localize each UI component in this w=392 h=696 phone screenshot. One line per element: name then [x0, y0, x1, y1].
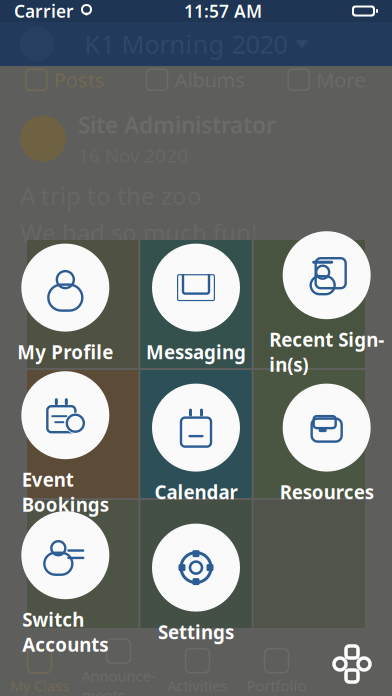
- staticText: Activities: [167, 676, 227, 695]
- button[interactable]: Messaging: [131, 240, 261, 368]
- staticText: Event Bookings: [22, 467, 109, 517]
- staticText: Switch Accounts: [22, 607, 108, 657]
- staticText: Announcements: [81, 666, 155, 696]
- staticText: Albums: [174, 66, 245, 93]
- staticText: Calendar: [154, 480, 237, 504]
- staticText: Resources: [280, 480, 374, 504]
- staticText: Site Administrator: [78, 110, 276, 140]
- staticText: My Profile: [17, 340, 113, 364]
- staticText: 11:57 AM: [184, 0, 262, 22]
- staticText: K1 Morning 2020: [84, 27, 287, 61]
- staticText: Portfolio: [246, 676, 306, 695]
- button[interactable]: Announcements: [79, 639, 158, 696]
- button[interactable]: Quick menu: [328, 640, 376, 688]
- staticText: Carrier: [14, 0, 74, 22]
- staticText: More: [316, 66, 365, 93]
- button[interactable]: Settings: [131, 520, 261, 648]
- staticText: We had so much fun!: [20, 216, 257, 248]
- button[interactable]: Recent Sign-in(s): [261, 240, 392, 368]
- button[interactable]: My Profile: [0, 240, 131, 368]
- button[interactable]: Calendar: [131, 380, 261, 508]
- staticText: Messaging: [146, 340, 246, 364]
- staticText: Posts: [54, 66, 105, 93]
- button[interactable]: My Class: [0, 649, 79, 695]
- staticText: Settings: [158, 620, 234, 644]
- staticText: Recent Sign-in(s): [269, 327, 384, 377]
- button[interactable]: Event Bookings: [0, 380, 131, 508]
- button[interactable]: Switch Accounts: [0, 520, 131, 648]
- button[interactable]: Resources: [261, 380, 392, 508]
- staticText: My Class: [10, 676, 69, 695]
